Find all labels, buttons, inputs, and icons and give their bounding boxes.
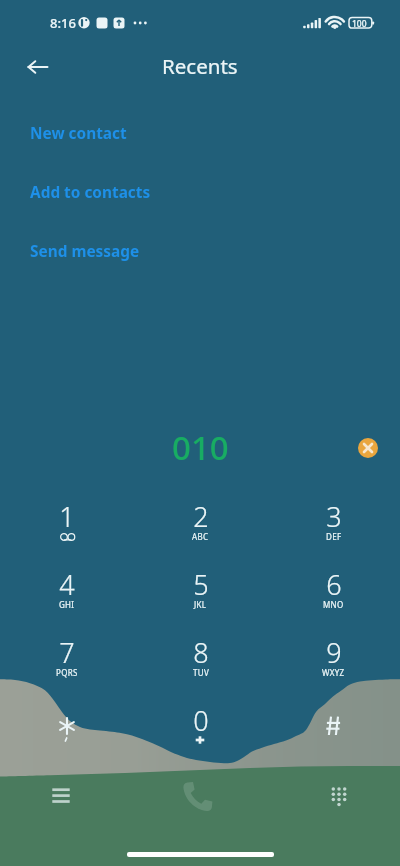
button[interactable]: 5 [134, 560, 267, 628]
staticText: 6 [326, 566, 342, 603]
staticText: 0 [193, 702, 209, 739]
button[interactable]: Send message [0, 222, 400, 281]
staticText: 8:16 [50, 14, 76, 32]
staticText: 3 [326, 498, 342, 535]
button[interactable] [0, 696, 134, 764]
button[interactable]: 0 [134, 696, 267, 764]
button[interactable]: 6 [267, 560, 400, 628]
staticText: ABC [192, 531, 209, 542]
button[interactable]: 3 [267, 492, 400, 560]
staticText: 7 [59, 634, 75, 671]
staticText: Recents [162, 52, 238, 80]
staticText: PQRS [56, 667, 78, 678]
staticText: GHI [59, 599, 75, 610]
button[interactable]: 7 [0, 628, 134, 696]
staticText: DEF [326, 531, 342, 542]
button[interactable]: 9 [267, 628, 400, 696]
button[interactable]: Clear [358, 438, 378, 458]
staticText: MNO [323, 599, 344, 610]
staticText: 1 [59, 498, 75, 535]
staticText: WXYZ [322, 667, 345, 678]
staticText: 100 [352, 18, 367, 30]
staticText: TUV [193, 667, 209, 678]
staticText: 4 [59, 566, 75, 603]
button[interactable]: Dialpad [319, 778, 359, 818]
staticText: 010 [172, 425, 229, 470]
button[interactable]: 4 [0, 560, 134, 628]
staticText: Add to contacts [30, 182, 151, 203]
staticText: 2 [193, 498, 209, 535]
button[interactable]: Menu [41, 778, 81, 818]
staticText: JKL [194, 599, 207, 610]
staticText: New contact [30, 123, 127, 144]
button[interactable]: Add to contacts [0, 163, 400, 222]
staticText: 9 [326, 634, 342, 671]
staticText: Send message [30, 241, 140, 262]
button[interactable]: Back [19, 49, 55, 85]
button[interactable]: Call [178, 778, 222, 822]
staticText: 5 [193, 566, 209, 603]
button[interactable] [267, 696, 400, 764]
staticText: 8 [193, 634, 209, 671]
button[interactable]: 2 [134, 492, 267, 560]
button[interactable]: New contact [0, 104, 400, 163]
button[interactable]: 1 [0, 492, 134, 560]
button[interactable]: 8 [134, 628, 267, 696]
